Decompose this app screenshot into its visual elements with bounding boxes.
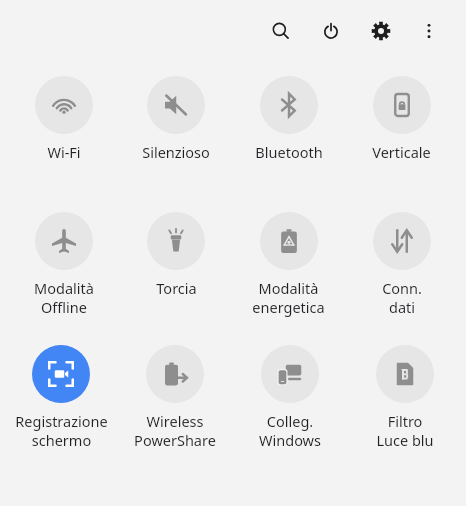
button[interactable]: Wi-Fi xyxy=(8,76,120,162)
staticText: Wi-Fi xyxy=(47,142,81,162)
button[interactable]: Conn. dati xyxy=(345,212,458,317)
button[interactable]: More options xyxy=(406,8,452,54)
button[interactable]: Colleg. Windows xyxy=(232,345,347,450)
staticText: Torcia xyxy=(156,278,197,298)
staticText: Verticale xyxy=(372,142,431,162)
button[interactable]: Verticale xyxy=(345,76,458,162)
button[interactable]: Search xyxy=(258,8,304,54)
button[interactable]: Wireless PowerShare xyxy=(118,345,232,450)
button[interactable]: Modalità Offline xyxy=(8,212,120,317)
button[interactable]: Modalità energetica xyxy=(232,212,345,317)
staticText: Wireless PowerShare xyxy=(134,411,216,450)
button[interactable]: Filtro Luce blu xyxy=(347,345,462,450)
staticText: Modalità energetica xyxy=(252,278,325,317)
button[interactable]: Power xyxy=(308,8,354,54)
button[interactable]: Settings xyxy=(358,8,404,54)
button[interactable]: Torcia xyxy=(120,212,232,298)
staticText: Conn. dati xyxy=(382,278,422,317)
staticText: Colleg. Windows xyxy=(259,411,321,450)
staticText: Bluetooth xyxy=(255,142,323,162)
button[interactable]: Silenzioso xyxy=(120,76,232,162)
staticText: Filtro Luce blu xyxy=(376,411,434,450)
button[interactable]: Bluetooth xyxy=(232,76,345,162)
staticText: Registrazione schermo xyxy=(15,411,108,450)
staticText: Silenzioso xyxy=(142,142,210,162)
button[interactable]: Registrazione schermo xyxy=(4,345,118,450)
staticText: Modalità Offline xyxy=(34,278,94,317)
